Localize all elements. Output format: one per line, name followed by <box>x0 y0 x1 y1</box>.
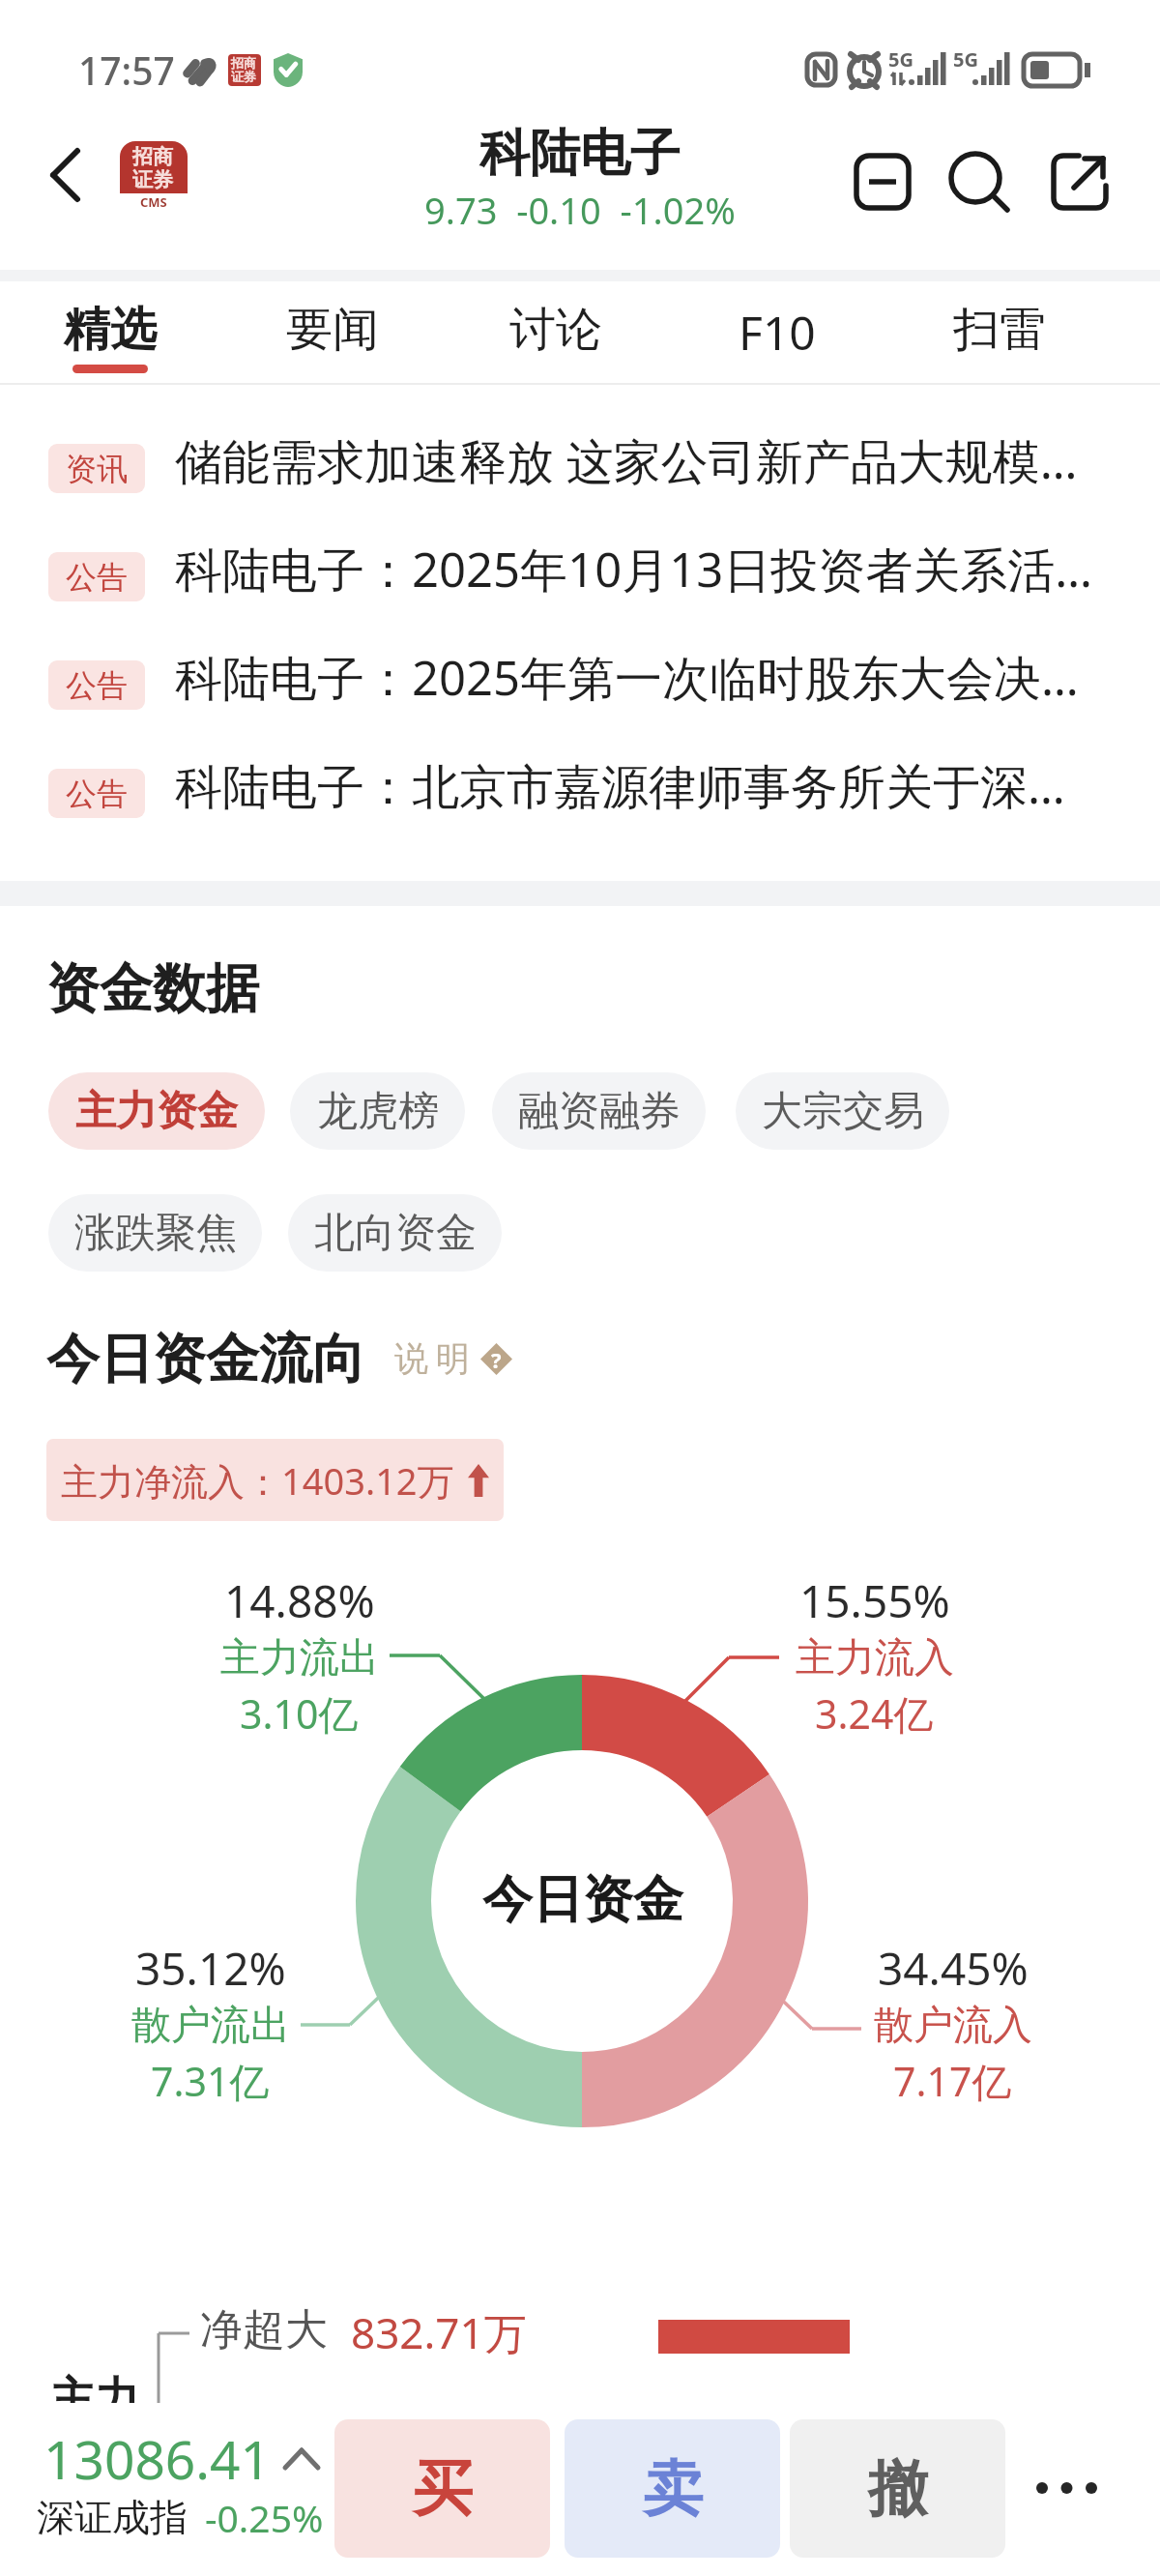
staticText: 今日资金流向 <box>46 1326 365 1392</box>
staticText: CMS <box>140 193 167 210</box>
button[interactable]: 主力资金 <box>48 1072 265 1150</box>
button[interactable]: 资讯 <box>0 415 1160 523</box>
staticText: 散户流出 <box>131 2001 290 2051</box>
staticText: 9.73 -0.10 -1.02% <box>424 185 736 235</box>
staticText: 资金数据 <box>46 955 259 1022</box>
staticText: 扫雷 <box>953 301 1046 359</box>
staticText: 招商 <box>132 144 173 169</box>
button[interactable]: 北向资金 <box>288 1194 502 1272</box>
button[interactable]: More <box>1013 2419 1121 2558</box>
staticText: 科陆电子：北京市嘉源律师事务所关于深… <box>175 753 1065 818</box>
button[interactable]: 涨跌聚焦 <box>48 1194 262 1272</box>
staticText: 招商 <box>231 55 256 71</box>
staticText: 主力流出 <box>220 1633 379 1683</box>
button[interactable]: 融资融券 <box>492 1072 706 1150</box>
button[interactable]: Share <box>1027 129 1133 235</box>
button[interactable]: 公告 <box>0 740 1160 848</box>
staticText: 科陆电子 <box>479 122 681 186</box>
staticText: 讨论 <box>509 301 602 359</box>
staticText: 撤 <box>868 2451 928 2527</box>
button[interactable]: 讨论 <box>449 281 662 378</box>
staticText: 证券 <box>132 167 173 192</box>
button[interactable]: 说明 <box>391 1337 513 1380</box>
button[interactable]: 卖 <box>565 2419 780 2558</box>
staticText: 说明 <box>391 1337 474 1380</box>
staticText: 主力流入 <box>796 1633 954 1683</box>
staticText: 公告 <box>66 775 128 813</box>
staticText: 今日资金 <box>482 1868 683 1932</box>
staticText: 证券 <box>231 69 256 84</box>
staticText: 龙虎榜 <box>317 1086 439 1137</box>
button[interactable]: 大宗交易 <box>736 1072 949 1150</box>
button[interactable]: Search <box>925 129 1031 235</box>
button[interactable]: 公告 <box>0 631 1160 740</box>
staticText: 科陆电子：2025年10月13日投资者关系活… <box>175 537 1092 601</box>
staticText: 深证成指 <box>37 2494 188 2541</box>
staticText: 34.45% <box>878 1938 1029 1999</box>
button[interactable]: 扫雷 <box>893 281 1106 378</box>
button[interactable]: 龙虎榜 <box>290 1072 465 1150</box>
staticText: 35.12% <box>135 1938 286 1999</box>
staticText: 融资融券 <box>518 1086 681 1137</box>
button[interactable]: 买 <box>334 2419 550 2558</box>
staticText: 5G <box>953 46 978 73</box>
staticText: 14.88% <box>224 1570 375 1631</box>
staticText: -0.25% <box>205 2492 324 2543</box>
staticText: 公告 <box>66 558 128 597</box>
staticText: 15.55% <box>799 1570 950 1631</box>
staticText: 卖 <box>643 2451 703 2527</box>
button[interactable]: 精选 <box>4 281 217 378</box>
staticText: 大宗交易 <box>762 1086 924 1137</box>
button[interactable]: Minimize <box>829 129 936 235</box>
staticText: 主力净流入：1403.12万 <box>61 1455 454 1506</box>
staticText: 资讯 <box>66 450 128 488</box>
button[interactable]: F10 <box>671 281 884 378</box>
staticText: 要闻 <box>286 301 379 359</box>
button[interactable]: 公告 <box>0 523 1160 631</box>
staticText: 买 <box>413 2451 473 2527</box>
button[interactable]: 撤 <box>790 2419 1005 2558</box>
staticText: 主力资金 <box>75 1086 238 1137</box>
staticText: 5G <box>888 46 913 73</box>
staticText: 3.10亿 <box>240 1686 359 1741</box>
staticText: 832.71万 <box>351 2303 527 2361</box>
staticText: 公告 <box>66 666 128 705</box>
staticText: 净超大 <box>200 2303 328 2356</box>
staticText: 7.31亿 <box>151 2054 270 2108</box>
staticText: F10 <box>739 301 816 364</box>
staticText: 7.17亿 <box>893 2054 1012 2108</box>
button[interactable]: 要闻 <box>226 281 439 378</box>
button[interactable]: Back <box>25 128 112 236</box>
staticText: 北向资金 <box>314 1208 477 1259</box>
button[interactable]: Broker logo <box>120 141 188 210</box>
staticText: 储能需求加速释放 这家公司新产品大规模… <box>175 428 1078 493</box>
staticText: 精选 <box>64 301 157 359</box>
staticText: ? <box>491 1345 502 1374</box>
staticText: 科陆电子：2025年第一次临时股东大会决… <box>175 645 1079 710</box>
staticText: 主力 <box>50 2371 139 2427</box>
staticText: 13086.41 <box>43 2422 271 2495</box>
staticText: 3.24亿 <box>815 1686 934 1741</box>
staticText: 涨跌聚焦 <box>74 1208 237 1259</box>
staticText: 17:57 <box>78 44 175 96</box>
staticText: 散户流入 <box>874 2001 1032 2051</box>
